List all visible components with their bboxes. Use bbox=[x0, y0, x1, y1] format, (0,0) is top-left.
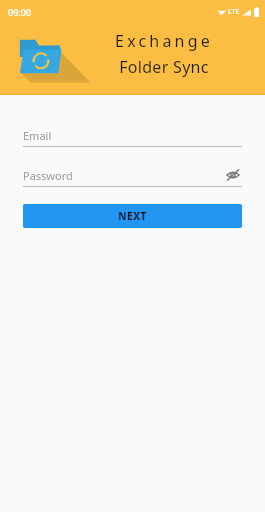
button[interactable]: Show password bbox=[224, 166, 242, 184]
staticText: Exchange bbox=[115, 30, 213, 52]
staticText: Folder Sync bbox=[119, 56, 209, 78]
staticText: NEXT bbox=[118, 209, 147, 223]
staticText: Email bbox=[23, 128, 52, 143]
button[interactable]: Password bbox=[23, 164, 242, 187]
button[interactable]: Email bbox=[23, 124, 242, 147]
staticText: Password bbox=[23, 168, 73, 183]
button[interactable]: NEXT bbox=[23, 204, 242, 228]
staticText: 09:00 bbox=[8, 6, 32, 18]
staticText: LTE bbox=[228, 7, 240, 17]
